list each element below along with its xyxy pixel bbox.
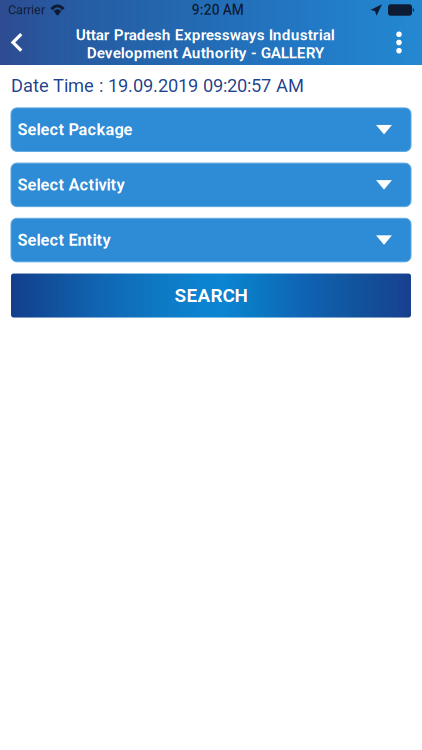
button[interactable]: Select Activity	[11, 163, 411, 207]
button[interactable]: Select Package	[11, 108, 411, 151]
staticText: 9:20 AM	[192, 2, 244, 18]
staticText: Uttar Pradesh Expressways Industrial Dev…	[75, 26, 334, 62]
staticText: SEARCH	[174, 284, 247, 307]
button[interactable]: SEARCH	[11, 273, 411, 317]
button[interactable]: Select Entity	[11, 218, 411, 262]
staticText: Select Entity	[17, 230, 110, 250]
button[interactable]: Back	[0, 20, 34, 65]
staticText: Select Activity	[17, 175, 124, 194]
staticText: Select Package	[17, 120, 132, 139]
staticText: Carrier	[8, 3, 45, 17]
staticText: Date Time : 19.09.2019 09:20:57 AM	[11, 75, 304, 96]
button[interactable]: More options	[376, 20, 422, 65]
